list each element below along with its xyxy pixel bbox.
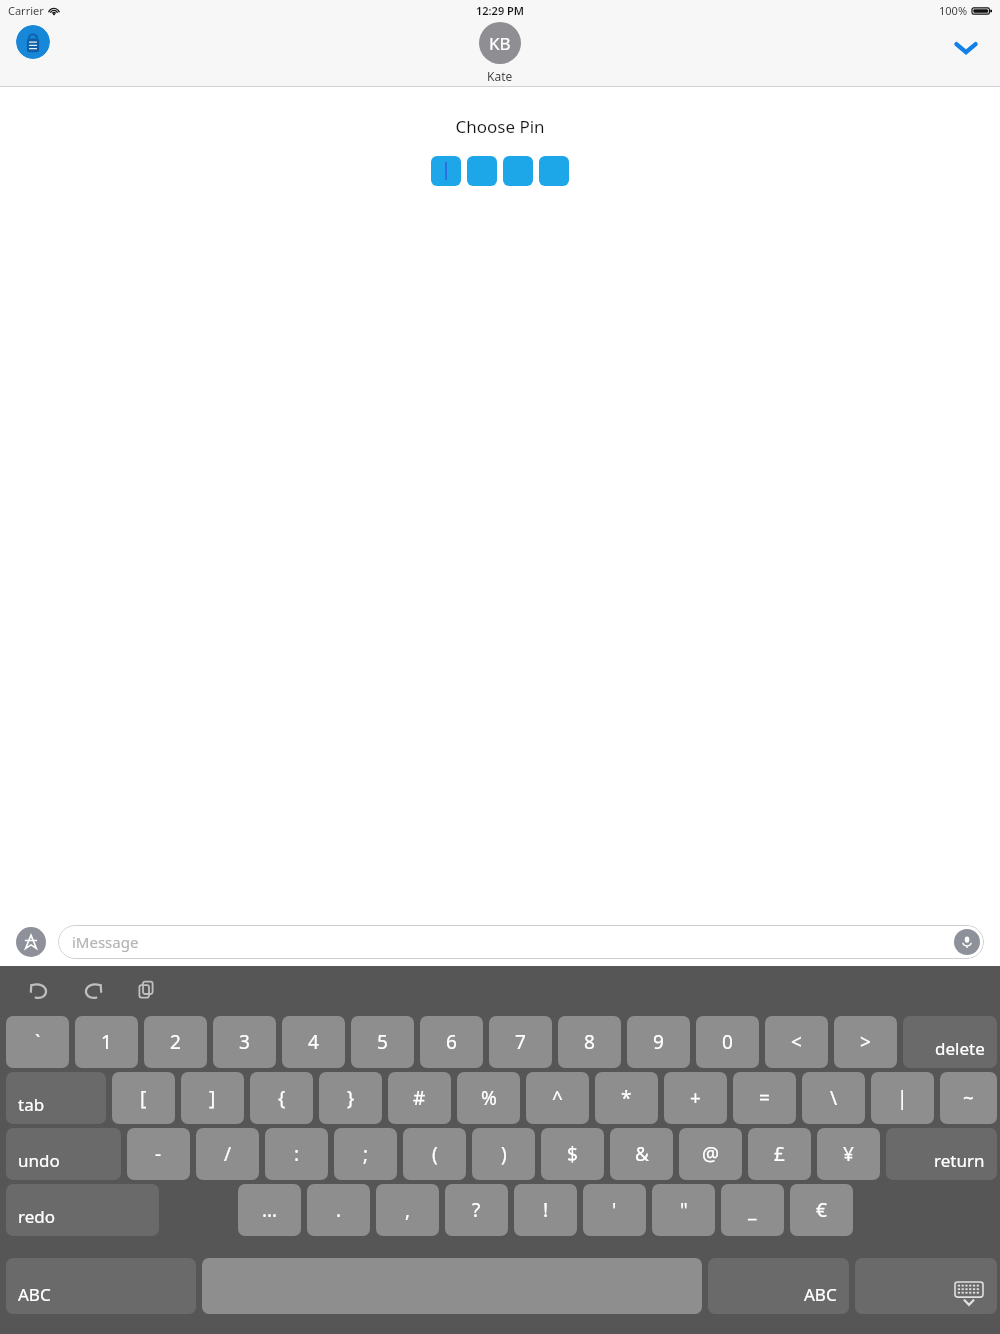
button[interactable]: ¥	[817, 1128, 880, 1180]
button[interactable]: 1	[75, 1016, 138, 1068]
button[interactable]: -	[127, 1128, 190, 1180]
staticText: 1	[101, 1029, 112, 1055]
button[interactable]: €	[790, 1184, 853, 1236]
staticText: tab	[18, 1093, 45, 1116]
staticText: `	[35, 1029, 41, 1055]
button[interactable]: @	[679, 1128, 742, 1180]
button[interactable]: 4	[282, 1016, 345, 1068]
button[interactable]: <	[765, 1016, 828, 1068]
button[interactable]: 7	[489, 1016, 552, 1068]
staticText: #	[413, 1085, 426, 1111]
button[interactable]: %	[457, 1072, 520, 1124]
staticText: ,	[405, 1197, 411, 1223]
button[interactable]: iMessage	[58, 925, 984, 959]
button[interactable]: `	[6, 1016, 69, 1068]
button[interactable]: :	[265, 1128, 328, 1180]
staticText: Carrier	[8, 3, 44, 18]
button[interactable]: …	[238, 1184, 301, 1236]
button[interactable]: delete	[903, 1016, 997, 1068]
button[interactable]: ^	[526, 1072, 589, 1124]
staticText: <	[791, 1029, 802, 1055]
button[interactable]	[503, 156, 533, 186]
button[interactable]: Redo	[76, 973, 110, 1007]
staticText: iMessage	[72, 932, 139, 952]
button[interactable]: 0	[696, 1016, 759, 1068]
button[interactable]: Paste	[130, 973, 164, 1007]
staticText: 3	[239, 1029, 250, 1055]
staticText: =	[759, 1085, 770, 1111]
button[interactable]: tab	[6, 1072, 106, 1124]
button[interactable]: ]	[181, 1072, 244, 1124]
button[interactable]: =	[733, 1072, 796, 1124]
staticText: return	[934, 1149, 985, 1172]
staticText: Choose Pin	[455, 115, 545, 138]
button[interactable]: £	[748, 1128, 811, 1180]
button[interactable]: +	[664, 1072, 727, 1124]
button[interactable]: KB	[479, 22, 521, 84]
staticText: "	[680, 1197, 688, 1223]
button[interactable]: ,	[376, 1184, 439, 1236]
staticText: 8	[584, 1029, 595, 1055]
staticText: +	[690, 1085, 701, 1111]
button[interactable]: |	[871, 1072, 934, 1124]
staticText: redo	[18, 1205, 56, 1228]
staticText: £	[774, 1141, 785, 1167]
button[interactable]: ABC	[6, 1258, 196, 1314]
staticText: ~	[963, 1085, 974, 1111]
staticText: !	[543, 1197, 549, 1223]
button[interactable]: Collapse	[946, 28, 986, 68]
button[interactable]: Undo	[22, 973, 56, 1007]
button[interactable]: ?	[445, 1184, 508, 1236]
staticText: _	[748, 1197, 757, 1223]
staticText: €	[816, 1197, 827, 1223]
button[interactable]: '	[583, 1184, 646, 1236]
staticText: &	[635, 1141, 649, 1167]
button[interactable]: &	[610, 1128, 673, 1180]
button[interactable]: redo	[6, 1184, 159, 1236]
button[interactable]: }	[319, 1072, 382, 1124]
button[interactable]: 8	[558, 1016, 621, 1068]
staticText: |	[897, 1085, 908, 1111]
button[interactable]: App Store	[16, 927, 46, 957]
button[interactable]: ~	[940, 1072, 997, 1124]
button[interactable]: 3	[213, 1016, 276, 1068]
button[interactable]: (	[403, 1128, 466, 1180]
staticText: 100%	[939, 3, 968, 18]
button[interactable]: #	[388, 1072, 451, 1124]
button[interactable]: Dictate	[954, 929, 980, 955]
button[interactable]	[467, 156, 497, 186]
button[interactable]: ;	[334, 1128, 397, 1180]
staticText: $	[567, 1141, 578, 1167]
button[interactable]: 5	[351, 1016, 414, 1068]
button[interactable]: >	[834, 1016, 897, 1068]
button[interactable]: *	[595, 1072, 658, 1124]
button[interactable]: "	[652, 1184, 715, 1236]
button[interactable]: /	[196, 1128, 259, 1180]
staticText: .	[336, 1197, 342, 1223]
button[interactable]: Secure app	[16, 25, 50, 59]
button[interactable]: 9	[627, 1016, 690, 1068]
button[interactable]: [	[112, 1072, 175, 1124]
staticText: ¥	[843, 1141, 854, 1167]
button[interactable]: 6	[420, 1016, 483, 1068]
button[interactable]: Hide keyboard	[855, 1258, 997, 1314]
staticText: 12:29 PM	[476, 3, 525, 18]
button[interactable]	[431, 156, 461, 186]
staticText: KB	[489, 32, 511, 55]
button[interactable]: !	[514, 1184, 577, 1236]
button[interactable]: _	[721, 1184, 784, 1236]
staticText: /	[224, 1141, 232, 1167]
staticText: :	[294, 1141, 300, 1167]
button[interactable]: .	[307, 1184, 370, 1236]
button[interactable]: \	[802, 1072, 865, 1124]
button[interactable]: 2	[144, 1016, 207, 1068]
button[interactable]: )	[472, 1128, 535, 1180]
button[interactable]: return	[886, 1128, 997, 1180]
button[interactable]: undo	[6, 1128, 121, 1180]
button[interactable]: {	[250, 1072, 313, 1124]
button[interactable]: ABC	[708, 1258, 849, 1314]
button[interactable]	[539, 156, 569, 186]
button[interactable]: $	[541, 1128, 604, 1180]
staticText: ABC	[804, 1283, 837, 1306]
